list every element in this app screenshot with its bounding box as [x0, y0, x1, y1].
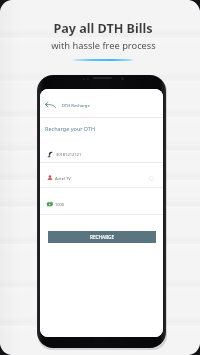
button[interactable]: Airtel TV — [40, 169, 163, 187]
button[interactable]: Back — [44, 99, 56, 111]
staticText: Recharge your DTH — [45, 125, 95, 132]
staticText: RECHARGE — [90, 234, 115, 240]
button[interactable]: 1000 — [40, 195, 163, 213]
button[interactable]: RECHARGE — [48, 231, 156, 243]
staticText: Airtel TV — [55, 176, 71, 181]
staticText: 30181212121 — [56, 152, 82, 157]
staticText: DTH Recharge — [62, 103, 90, 109]
staticText: 1000 — [55, 202, 65, 207]
staticText: Pay all DTH Bills — [53, 20, 153, 37]
staticText: with hassle free process — [51, 39, 156, 52]
button[interactable]: 30181212121 — [40, 145, 163, 163]
